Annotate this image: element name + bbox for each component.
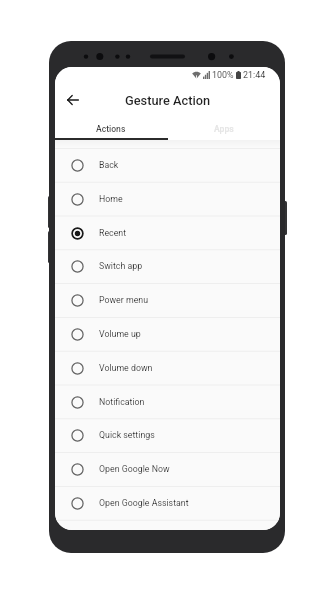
button[interactable]: Recent — [55, 216, 280, 250]
staticText: 21:44 — [243, 70, 266, 80]
button[interactable]: Volume up — [55, 317, 280, 351]
staticText: Power menu — [99, 295, 149, 305]
staticText: Volume down — [99, 363, 153, 373]
staticText: 100% — [212, 70, 234, 80]
staticText: Actions — [96, 124, 126, 134]
staticText: Recent — [99, 228, 127, 238]
button[interactable]: Open Google Assistant — [55, 486, 280, 520]
button[interactable]: Back — [55, 148, 280, 182]
button[interactable]: Back — [61, 88, 85, 112]
staticText: Quick settings — [99, 430, 155, 440]
staticText: Open Google Assistant — [99, 498, 189, 508]
staticText: Switch app — [99, 261, 143, 271]
staticText: Back — [99, 160, 119, 170]
staticText: Home — [99, 194, 123, 204]
button[interactable]: Power menu — [55, 283, 280, 317]
staticText: Notification — [99, 397, 145, 407]
button[interactable]: Notification — [55, 385, 280, 419]
staticText: Apps — [214, 124, 234, 134]
button[interactable]: Quick settings — [55, 418, 280, 452]
button[interactable]: Volume down — [55, 351, 280, 385]
button[interactable]: Actions — [55, 118, 167, 140]
button[interactable]: Apps — [167, 118, 280, 140]
staticText: Volume up — [99, 329, 141, 339]
staticText: Gesture Action — [125, 93, 211, 108]
staticText: Open Google Now — [99, 464, 170, 474]
button[interactable]: Switch app — [55, 249, 280, 283]
button[interactable]: Open Google Now — [55, 452, 280, 486]
button[interactable]: Home — [55, 182, 280, 216]
